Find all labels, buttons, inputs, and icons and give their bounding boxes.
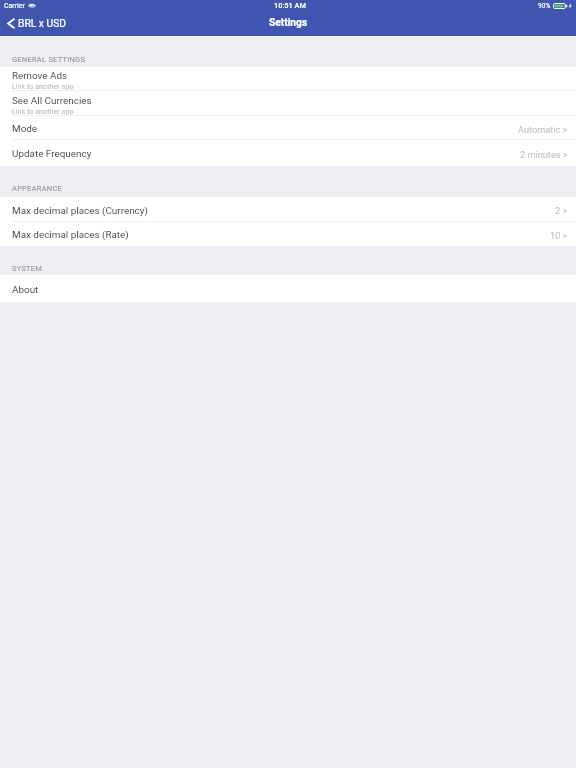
button[interactable]: Remove Ads	[0, 67, 576, 91]
button[interactable]: Max decimal places (Currency)	[0, 197, 576, 222]
other: Back	[7, 18, 15, 29]
staticText: 10 >	[550, 230, 568, 241]
staticText: Carrier	[4, 2, 25, 10]
staticText: Max decimal places (Currency)	[12, 205, 148, 217]
staticText: APPEARANCE	[12, 184, 63, 193]
button[interactable]: Update Frequency	[0, 140, 576, 166]
staticText: 90%	[538, 2, 551, 10]
staticText: See All Currencies	[12, 95, 92, 107]
staticText: 2 >	[555, 205, 568, 216]
staticText: 2 minutes >	[520, 149, 568, 160]
staticText: Settings	[269, 17, 308, 29]
staticText: Mode	[12, 123, 38, 135]
staticText: BRL x USD	[18, 17, 67, 29]
staticText: GENERAL SETTINGS	[12, 55, 86, 64]
staticText: Max decimal places (Rate)	[12, 229, 129, 241]
staticText: Automatic >	[518, 124, 568, 135]
staticText: Remove Ads	[12, 70, 68, 82]
button[interactable]: Back	[0, 15, 73, 31]
button[interactable]: Max decimal places (Rate)	[0, 222, 576, 246]
staticText: SYSTEM	[12, 264, 43, 273]
staticText: About	[12, 284, 39, 296]
staticText: Update Frequency	[12, 148, 92, 160]
staticText: Link to another app	[12, 82, 74, 90]
button[interactable]: Mode	[0, 116, 576, 140]
staticText: 10:51 AM	[274, 1, 306, 10]
button[interactable]: About	[0, 275, 576, 302]
staticText: Link to another app	[12, 107, 74, 115]
button[interactable]: See All Currencies	[0, 91, 576, 116]
